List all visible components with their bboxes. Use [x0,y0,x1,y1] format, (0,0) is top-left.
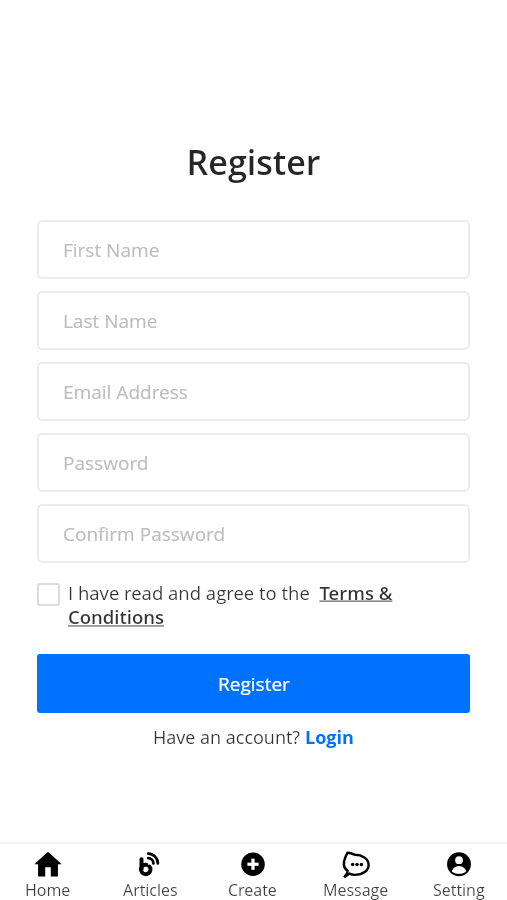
button[interactable]: First Name [37,220,470,279]
staticText: Password [63,450,149,476]
staticText: Last Name [63,308,158,334]
staticText: Register [0,139,507,185]
button[interactable]: Message [304,842,407,900]
button[interactable]: Email Address [37,362,470,421]
button[interactable]: Register [37,654,470,713]
button[interactable]: I have read and agree to the Terms & Con… [68,580,403,630]
staticText: Register [218,671,290,697]
staticText: Have an account? [153,725,305,750]
staticText: Message [323,879,389,900]
button[interactable]: Last Name [37,291,470,350]
staticText: Articles [123,879,178,900]
button[interactable]: Setting [407,842,507,900]
button[interactable]: Home [0,842,99,900]
staticText: Home [25,879,71,900]
button[interactable]: Articles [99,842,201,900]
staticText: First Name [63,237,160,263]
button[interactable]: Password [37,433,470,492]
staticText: Create [228,879,277,900]
button[interactable]: Confirm Password [37,504,470,563]
staticText: Email Address [63,379,188,405]
button[interactable]: Login [305,725,354,750]
button[interactable]: Create [201,842,304,900]
button[interactable]: Agree to terms and conditions [37,583,60,606]
staticText: Setting [433,879,485,900]
staticText: Confirm Password [63,521,226,547]
